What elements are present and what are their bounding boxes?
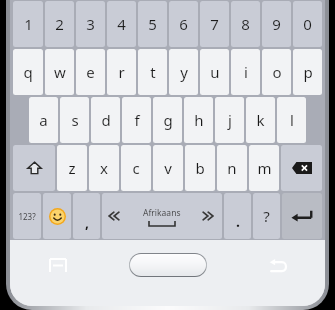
button[interactable]: Backspace: [281, 145, 322, 191]
staticText: y: [180, 62, 188, 82]
button[interactable]: x: [89, 145, 119, 191]
button[interactable]: .: [224, 193, 251, 239]
staticText: a: [39, 110, 48, 130]
staticText: ,: [85, 213, 89, 232]
button[interactable]: 0: [293, 1, 322, 47]
button[interactable]: Enter: [282, 193, 322, 239]
staticText: r: [118, 62, 125, 82]
staticText: m: [257, 158, 272, 178]
staticText: 0: [303, 14, 312, 34]
staticText: 5: [148, 14, 157, 34]
button[interactable]: 3: [76, 1, 105, 47]
staticText: e: [86, 62, 95, 82]
staticText: p: [303, 62, 313, 82]
button[interactable]: 7: [200, 1, 229, 47]
staticText: 6: [179, 14, 188, 34]
staticText: o: [272, 62, 282, 82]
button[interactable]: ?: [253, 193, 280, 239]
staticText: f: [134, 110, 140, 130]
staticText: 1: [24, 14, 33, 34]
button[interactable]: z: [57, 145, 87, 191]
other: Backspace: [281, 145, 322, 191]
staticText: 4: [117, 14, 126, 34]
button[interactable]: j: [215, 97, 244, 143]
button[interactable]: q: [13, 49, 43, 95]
staticText: x: [100, 158, 108, 178]
button[interactable]: t: [138, 49, 167, 95]
staticText: q: [23, 62, 33, 82]
staticText: d: [101, 110, 111, 130]
button[interactable]: Emoji: [43, 193, 71, 239]
button[interactable]: d: [91, 97, 120, 143]
other: Enter: [282, 193, 322, 239]
staticText: t: [150, 62, 156, 82]
staticText: 2: [55, 14, 64, 34]
button[interactable]: f: [122, 97, 151, 143]
button[interactable]: p: [293, 49, 322, 95]
button[interactable]: g: [153, 97, 182, 143]
button[interactable]: m: [249, 145, 279, 191]
other: Next language: [202, 210, 216, 222]
button[interactable]: a: [29, 97, 58, 143]
staticText: u: [210, 62, 220, 82]
button[interactable]: 2: [45, 1, 74, 47]
button[interactable]: i: [231, 49, 260, 95]
button[interactable]: 9: [262, 1, 291, 47]
staticText: 3: [86, 14, 95, 34]
button[interactable]: k: [246, 97, 275, 143]
staticText: j: [228, 110, 232, 130]
staticText: Afrikaans: [143, 207, 181, 219]
button[interactable]: o: [262, 49, 291, 95]
button[interactable]: Shift: [13, 145, 55, 191]
button[interactable]: Home: [106, 248, 230, 282]
staticText: l: [290, 110, 294, 130]
staticText: .: [236, 212, 240, 231]
other: Shift: [13, 145, 55, 191]
button[interactable]: n: [217, 145, 247, 191]
staticText: h: [194, 110, 204, 130]
button[interactable]: 5: [138, 1, 167, 47]
button[interactable]: Menu: [10, 248, 106, 282]
staticText: v: [164, 158, 172, 178]
staticText: ?: [263, 206, 270, 226]
button[interactable]: c: [121, 145, 151, 191]
staticText: 123?: [18, 211, 36, 222]
button[interactable]: r: [107, 49, 136, 95]
button[interactable]: y: [169, 49, 198, 95]
other: Previous language: [108, 210, 122, 222]
button[interactable]: s: [60, 97, 89, 143]
button[interactable]: ,: [73, 193, 100, 239]
button[interactable]: 6: [169, 1, 198, 47]
button[interactable]: u: [200, 49, 229, 95]
button[interactable]: 8: [231, 1, 260, 47]
button[interactable]: 123?: [13, 193, 41, 239]
staticText: k: [256, 110, 265, 130]
button[interactable]: w: [45, 49, 74, 95]
button[interactable]: l: [277, 97, 306, 143]
staticText: b: [195, 158, 205, 178]
staticText: 9: [272, 14, 281, 34]
staticText: w: [54, 62, 66, 82]
button[interactable]: 4: [107, 1, 136, 47]
other: Emoji: [43, 193, 71, 239]
staticText: g: [163, 110, 173, 130]
button[interactable]: h: [184, 97, 213, 143]
button[interactable]: b: [185, 145, 215, 191]
staticText: 7: [210, 14, 219, 34]
staticText: n: [227, 158, 237, 178]
staticText: z: [68, 158, 76, 178]
staticText: 8: [241, 14, 250, 34]
button[interactable]: 1: [13, 1, 43, 47]
button[interactable]: e: [76, 49, 105, 95]
staticText: i: [244, 62, 248, 82]
button[interactable]: Previous language: [102, 193, 222, 239]
button[interactable]: v: [153, 145, 183, 191]
staticText: s: [71, 110, 79, 130]
staticText: c: [132, 158, 140, 178]
